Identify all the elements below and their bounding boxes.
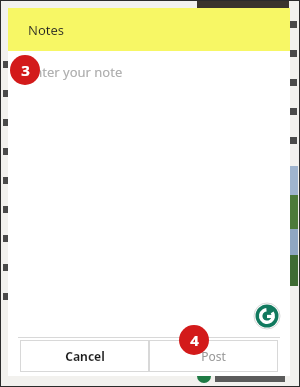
staticText: 4 bbox=[190, 330, 199, 350]
button[interactable]: Cancel bbox=[20, 340, 149, 372]
button[interactable]: Post bbox=[149, 340, 278, 372]
staticText: Notes bbox=[28, 21, 64, 39]
staticText: Enter your note bbox=[27, 63, 123, 81]
staticText: 3 bbox=[21, 60, 30, 80]
staticText: Cancel bbox=[65, 348, 105, 364]
staticText: Post bbox=[201, 348, 226, 364]
button[interactable]: Grammarly bbox=[254, 303, 280, 329]
